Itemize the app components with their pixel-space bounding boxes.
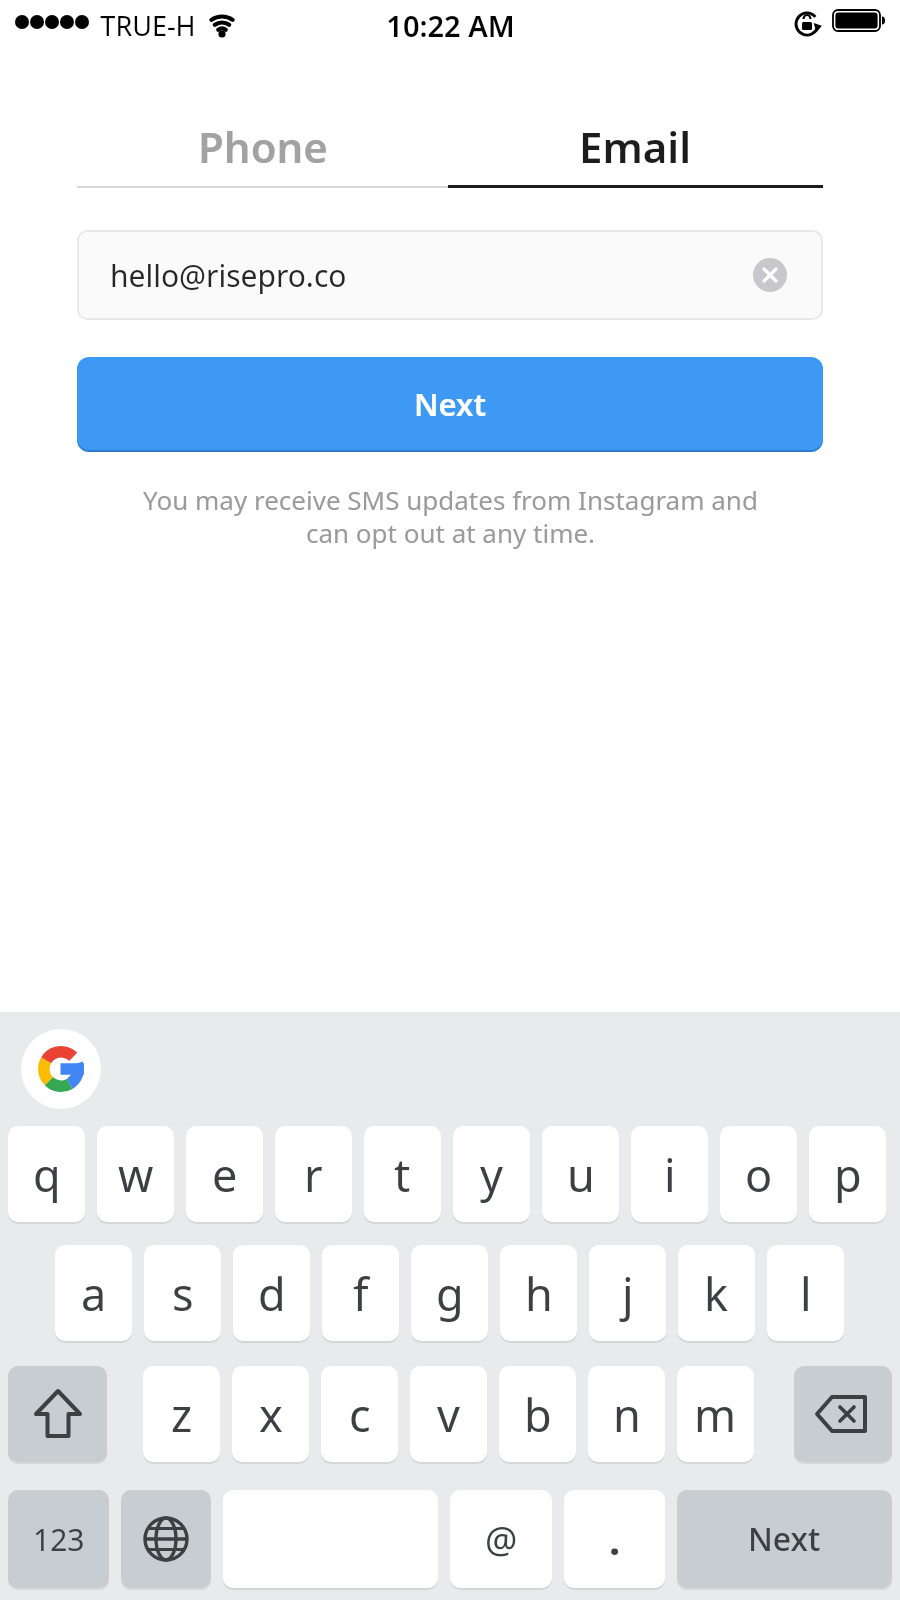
- button[interactable]: .: [564, 1490, 665, 1588]
- staticText: 123: [33, 1519, 85, 1560]
- button[interactable]: [21, 1029, 101, 1109]
- button[interactable]: y: [453, 1126, 530, 1222]
- button[interactable]: Next: [77, 357, 823, 450]
- staticText: m: [694, 1384, 737, 1445]
- button[interactable]: l: [767, 1245, 844, 1341]
- button[interactable]: t: [364, 1126, 441, 1222]
- button[interactable]: q: [8, 1126, 85, 1222]
- staticText: You may receive SMS updates from Instagr…: [143, 482, 758, 551]
- button[interactable]: m: [677, 1366, 754, 1462]
- staticText: Next: [748, 1517, 821, 1561]
- staticText: d: [258, 1263, 286, 1324]
- button[interactable]: b: [499, 1366, 576, 1462]
- staticText: TRUE-H: [100, 7, 196, 37]
- button[interactable]: f: [322, 1245, 399, 1341]
- button[interactable]: Email: [448, 110, 823, 182]
- button[interactable]: [794, 1366, 892, 1462]
- staticText: Phone: [198, 118, 328, 175]
- button[interactable]: e: [186, 1126, 263, 1222]
- button[interactable]: @: [450, 1490, 552, 1588]
- button[interactable]: h: [500, 1245, 577, 1341]
- staticText: @: [485, 1515, 518, 1564]
- button[interactable]: i: [631, 1126, 708, 1222]
- staticText: e: [212, 1144, 238, 1205]
- button[interactable]: n: [588, 1366, 665, 1462]
- staticText: h: [525, 1263, 553, 1324]
- button[interactable]: [121, 1490, 211, 1588]
- staticText: g: [436, 1263, 464, 1324]
- staticText: w: [118, 1144, 154, 1205]
- staticText: p: [834, 1144, 862, 1205]
- button[interactable]: [8, 1366, 107, 1462]
- button[interactable]: Next: [677, 1490, 892, 1588]
- button[interactable]: c: [321, 1366, 398, 1462]
- button[interactable]: x: [232, 1366, 309, 1462]
- staticText: hello@risepro.co: [110, 255, 347, 296]
- staticText: s: [172, 1263, 194, 1324]
- staticText: v: [437, 1384, 460, 1445]
- staticText: o: [745, 1144, 773, 1205]
- button[interactable]: s: [144, 1245, 221, 1341]
- button[interactable]: r: [275, 1126, 352, 1222]
- staticText: a: [81, 1263, 107, 1324]
- button[interactable]: [753, 258, 787, 292]
- staticText: n: [613, 1384, 641, 1445]
- staticText: .: [609, 1512, 621, 1566]
- staticText: l: [800, 1263, 812, 1324]
- button[interactable]: 123: [8, 1490, 109, 1588]
- staticText: z: [171, 1384, 193, 1445]
- button[interactable]: o: [720, 1126, 797, 1222]
- staticText: c: [349, 1384, 371, 1445]
- staticText: i: [664, 1144, 676, 1205]
- staticText: j: [622, 1263, 634, 1324]
- staticText: q: [33, 1144, 61, 1205]
- button[interactable]: u: [542, 1126, 619, 1222]
- button[interactable]: d: [233, 1245, 310, 1341]
- staticText: x: [259, 1384, 283, 1445]
- button[interactable]: hello@risepro.co: [77, 230, 823, 320]
- button[interactable]: k: [678, 1245, 755, 1341]
- staticText: 10:22 AM: [386, 6, 515, 38]
- button[interactable]: a: [55, 1245, 132, 1341]
- staticText: u: [567, 1144, 595, 1205]
- button[interactable]: p: [809, 1126, 886, 1222]
- button[interactable]: j: [589, 1245, 666, 1341]
- staticText: y: [480, 1144, 503, 1205]
- staticText: Email: [579, 118, 692, 175]
- button[interactable]: v: [410, 1366, 487, 1462]
- button[interactable]: z: [143, 1366, 220, 1462]
- staticText: k: [704, 1263, 729, 1324]
- button[interactable]: g: [411, 1245, 488, 1341]
- staticText: b: [524, 1384, 552, 1445]
- staticText: Next: [414, 383, 487, 425]
- button[interactable]: w: [97, 1126, 174, 1222]
- staticText: f: [353, 1263, 369, 1324]
- button[interactable]: Phone: [77, 110, 448, 182]
- staticText: t: [394, 1144, 411, 1205]
- staticText: r: [304, 1144, 323, 1205]
